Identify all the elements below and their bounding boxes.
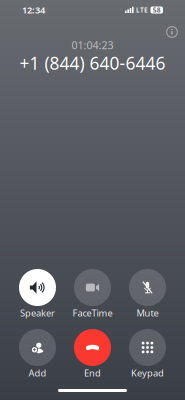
staticText: Speaker	[20, 307, 55, 319]
staticText: FaceTime	[72, 307, 112, 319]
button[interactable]: Speaker	[10, 269, 65, 320]
button[interactable]: End	[65, 329, 120, 380]
staticText: End	[84, 367, 101, 379]
staticText: 58	[153, 6, 161, 14]
button[interactable]: Add	[10, 329, 65, 380]
staticText: 01:04:23	[71, 38, 113, 52]
button[interactable]: Call details	[160, 20, 184, 44]
button[interactable]: Mute	[120, 269, 175, 320]
staticText: Add	[28, 367, 46, 379]
staticText: LTE	[136, 6, 148, 14]
staticText: 12:34	[22, 4, 45, 16]
button[interactable]: FaceTime	[65, 269, 120, 320]
button[interactable]: Keypad	[120, 329, 175, 380]
staticText: Keypad	[131, 367, 164, 379]
staticText: +1 (844) 640-6446	[19, 51, 165, 74]
staticText: Mute	[136, 307, 158, 319]
